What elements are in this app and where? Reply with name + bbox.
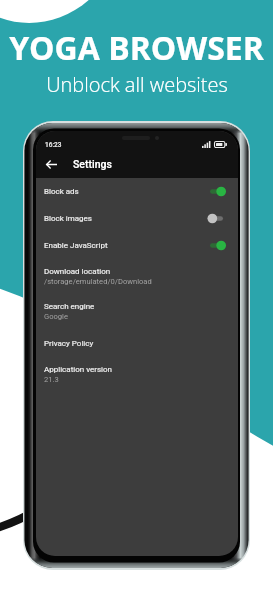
button[interactable]: Switch off (210, 213, 226, 224)
staticText: Download location (44, 267, 111, 276)
staticText: Block images (44, 214, 92, 223)
staticText: YOGA BROWSER (9, 26, 264, 70)
staticText: Google (44, 312, 68, 321)
button[interactable]: Switch on (210, 240, 226, 251)
staticText: Unblock all websites (46, 71, 228, 98)
button[interactable]: Block images (36, 205, 238, 232)
button[interactable]: Privacy Policy (36, 329, 238, 357)
staticText: 16:23 (45, 141, 62, 149)
staticText: Privacy Policy (44, 339, 94, 348)
staticText: /storage/emulated/0/Download (44, 277, 152, 286)
button[interactable]: Block ads (36, 178, 238, 205)
button[interactable]: Back (41, 154, 61, 174)
staticText: Application version (44, 365, 112, 374)
button[interactable]: Search engine (36, 294, 238, 329)
staticText: 21.3 (44, 375, 59, 384)
button[interactable]: Application version (36, 357, 238, 392)
staticText: Block ads (44, 187, 79, 196)
staticText: Enable JavaScript (44, 241, 108, 250)
staticText: Search engine (44, 302, 95, 311)
staticText: Settings (73, 158, 112, 170)
button[interactable]: Download location (36, 259, 238, 294)
button[interactable]: Enable JavaScript (36, 232, 238, 259)
button[interactable]: Switch on (210, 186, 226, 197)
